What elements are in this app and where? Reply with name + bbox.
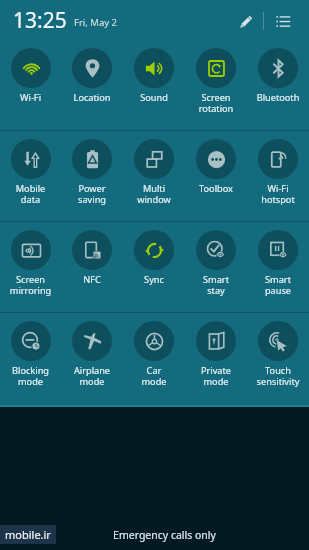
button[interactable]: Smart pause [247,222,309,300]
staticText: 13:25 [13,6,67,35]
other: Blocking mode [11,321,51,361]
button[interactable]: Multi window [123,131,185,209]
staticText: Sync [123,273,185,286]
staticText: Private mode [185,364,247,387]
button[interactable]: Edit [232,7,260,35]
staticText: Multi window [123,182,185,205]
other: Mobile data [11,139,51,179]
other: Airplane mode [72,321,112,361]
staticText: Mobile data [0,182,61,205]
staticText: Car mode [123,364,185,387]
staticText: Emergency calls only [20,528,309,542]
staticText: Fri, May 2 [74,16,118,29]
staticText: Screen mirroring [0,273,61,296]
button[interactable]: Touch sensitivity [247,313,309,391]
other: NFC [72,230,112,270]
other: Multi window [134,139,174,179]
staticText: Wi-Fi hotspot [247,182,309,205]
button[interactable]: Blocking mode [0,313,61,391]
other: Screen mirroring [11,230,51,270]
staticText: Power saving [61,182,123,205]
button[interactable]: Wi-Fi [0,40,61,108]
staticText: Screen rotation [185,91,247,114]
staticText: Blocking mode [0,364,61,387]
other: Location [72,48,112,88]
staticText: Toolbox [185,182,247,195]
staticText: NFC [61,273,123,286]
other: Sound [134,48,174,88]
button[interactable]: Power saving [61,131,123,209]
other: Toolbox [196,139,236,179]
staticText: Airplane mode [61,364,123,387]
button[interactable]: Bluetooth [247,40,309,108]
other: Wi-Fi hotspot [258,139,298,179]
button[interactable]: Location [61,40,123,108]
button[interactable]: Wi-Fi hotspot [247,131,309,209]
staticText: Bluetooth [247,91,309,104]
button[interactable]: NFC [61,222,123,290]
button[interactable]: Settings list [269,7,297,35]
button[interactable]: Car mode [123,313,185,391]
staticText: Touch sensitivity [247,364,309,387]
other: Touch sensitivity [258,321,298,361]
staticText: Smart pause [247,273,309,296]
other: Private mode [196,321,236,361]
other: Screen rotation [196,48,236,88]
other: Wi-Fi [11,48,51,88]
other: Sync [134,230,174,270]
other: Power saving [72,139,112,179]
staticText: Location [61,91,123,104]
button[interactable]: Screen rotation [185,40,247,118]
button[interactable]: Sync [123,222,185,290]
other: Bluetooth [258,48,298,88]
button[interactable]: Screen mirroring [0,222,61,300]
button[interactable]: Mobile data [0,131,61,209]
other: Smart pause [258,230,298,270]
button[interactable]: Smart stay [185,222,247,300]
button[interactable]: Sound [123,40,185,108]
button[interactable]: Airplane mode [61,313,123,391]
other: Car mode [134,321,174,361]
other: Smart stay [196,230,236,270]
staticText: Wi-Fi [0,91,61,104]
button[interactable]: Toolbox [185,131,247,199]
staticText: Sound [123,91,185,104]
staticText: Smart stay [185,273,247,296]
button[interactable]: Private mode [185,313,247,391]
staticText: mobile.ir [5,527,51,542]
